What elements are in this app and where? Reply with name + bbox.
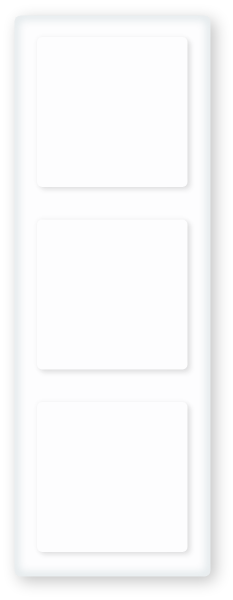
button[interactable] [0, 0, 233, 600]
